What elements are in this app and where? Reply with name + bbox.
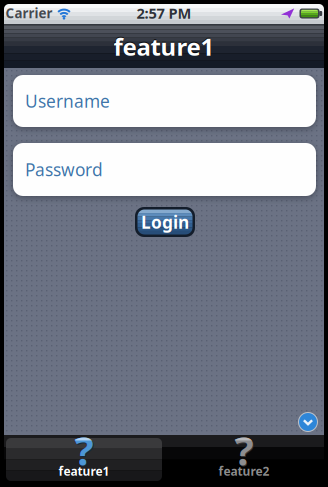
staticText: ? bbox=[75, 424, 94, 478]
staticText: Login bbox=[141, 210, 189, 233]
staticText: feature2 bbox=[218, 463, 269, 479]
button[interactable]: Username bbox=[13, 75, 316, 127]
staticText: ? bbox=[74, 423, 93, 477]
staticText: feature1 bbox=[58, 463, 109, 479]
staticText: 2:57 PM bbox=[136, 3, 191, 23]
staticText: ? bbox=[234, 423, 253, 477]
staticText: ? bbox=[74, 423, 93, 477]
staticText: Password bbox=[25, 158, 103, 181]
button[interactable]: Login bbox=[135, 207, 195, 237]
staticText: feature1 bbox=[113, 31, 214, 62]
staticText: ? bbox=[235, 424, 254, 478]
button[interactable]: ? bbox=[164, 435, 324, 484]
staticText: ? bbox=[234, 423, 253, 477]
button[interactable]: ? bbox=[4, 435, 164, 484]
button[interactable]: Password bbox=[13, 143, 316, 196]
button[interactable]: Scroll down bbox=[298, 412, 318, 432]
staticText: Carrier bbox=[5, 4, 52, 22]
staticText: Username bbox=[25, 89, 110, 112]
staticText: feature1 bbox=[113, 30, 214, 61]
